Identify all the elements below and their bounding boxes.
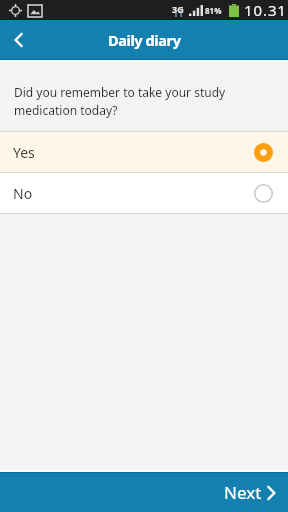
button[interactable]: Yes [0,132,288,172]
staticText: Yes [13,143,35,162]
staticText: Did you remember to take your study medi… [14,84,248,119]
staticText: Daily diary [108,30,181,50]
staticText: No [13,184,33,203]
staticText: 81% [205,5,222,16]
button[interactable]: Next [202,481,288,504]
staticText: Next [224,481,262,504]
staticText: 3G [172,3,184,15]
button[interactable]: No [0,173,288,213]
staticText: 10.31 [244,0,287,20]
button[interactable]: Back [0,22,36,58]
